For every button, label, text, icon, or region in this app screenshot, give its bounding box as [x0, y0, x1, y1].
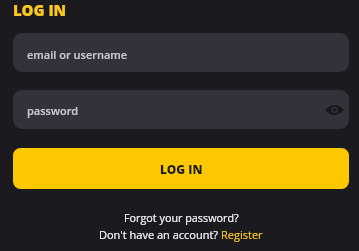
button[interactable]: Forgot your password? [124, 210, 239, 225]
staticText: email or username [27, 47, 128, 62]
staticText: Don't have an account? [99, 227, 221, 242]
staticText: LOG IN [13, 0, 67, 20]
staticText: password [27, 103, 79, 118]
button[interactable]: email or username [13, 33, 349, 72]
button[interactable]: Show password [320, 96, 348, 124]
button[interactable]: LOG IN [13, 148, 349, 189]
button[interactable]: password [13, 90, 349, 129]
staticText: LOG IN [160, 161, 203, 177]
button[interactable]: Register [221, 227, 263, 242]
